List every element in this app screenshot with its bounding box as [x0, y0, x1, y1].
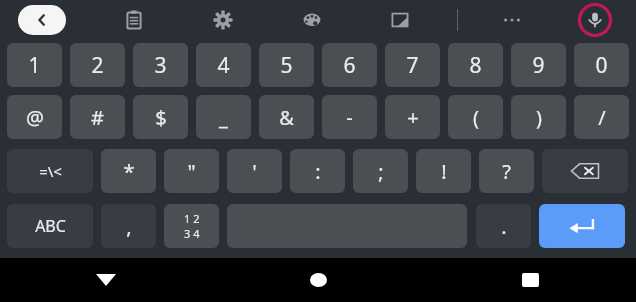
button[interactable]: ) [511, 95, 566, 139]
staticText: 6 [343, 51, 356, 80]
staticText: $ [155, 104, 167, 131]
staticText: _ [219, 104, 228, 131]
staticText: : [315, 158, 321, 185]
staticText: # [91, 104, 104, 131]
button[interactable]: Voice input [578, 3, 612, 37]
button[interactable]: 3 [133, 43, 188, 87]
staticText: ! [441, 158, 447, 185]
button[interactable]: 8 [448, 43, 503, 87]
button[interactable]: & [259, 95, 314, 139]
button[interactable]: Clipboard [119, 5, 149, 35]
staticText: 5 [280, 51, 293, 80]
staticText: 3 4 [184, 226, 200, 241]
button[interactable]: Resize keyboard [385, 5, 415, 35]
button[interactable]: : [290, 149, 345, 193]
staticText: / [598, 104, 606, 131]
staticText: - [346, 104, 353, 131]
button[interactable]: " [164, 149, 219, 193]
staticText: ? [502, 158, 511, 185]
button[interactable]: $ [133, 95, 188, 139]
button[interactable]: 2 [70, 43, 125, 87]
button[interactable]: # [70, 95, 125, 139]
button[interactable]: Back [0, 258, 212, 302]
button[interactable]: * [101, 149, 156, 193]
button[interactable]: , [101, 204, 156, 248]
button[interactable]: ? [479, 149, 534, 193]
button[interactable]: =\< [7, 149, 93, 193]
button[interactable]: - [322, 95, 377, 139]
staticText: 2 [91, 51, 104, 80]
button[interactable]: Enter [539, 204, 625, 248]
staticText: 9 [532, 51, 545, 80]
staticText: 3 [154, 51, 167, 80]
staticText: =\< [39, 161, 62, 181]
button[interactable]: ; [353, 149, 408, 193]
button[interactable]: Numbers [164, 204, 219, 248]
button[interactable]: Back [18, 5, 66, 35]
staticText: 7 [406, 51, 419, 80]
staticText: , [126, 213, 132, 240]
button[interactable]: 1 [7, 43, 62, 87]
button[interactable]: _ [196, 95, 251, 139]
staticText: 1 [28, 51, 41, 80]
button[interactable]: 9 [511, 43, 566, 87]
staticText: ; [378, 158, 384, 185]
button[interactable]: Backspace [542, 149, 628, 193]
staticText: 1 2 [184, 211, 200, 226]
staticText: 0 [595, 51, 608, 80]
button[interactable]: ABC [7, 204, 93, 248]
button[interactable]: Recent apps [424, 258, 636, 302]
staticText: . [501, 213, 507, 240]
staticText: ' [252, 158, 257, 185]
button[interactable]: 0 [574, 43, 629, 87]
staticText: 4 [217, 51, 230, 80]
button[interactable]: @ [7, 95, 62, 139]
staticText: * [123, 158, 135, 185]
button[interactable]: ' [227, 149, 282, 193]
button[interactable]: Theme [297, 5, 327, 35]
button[interactable]: ! [416, 149, 471, 193]
button[interactable]: Home [212, 258, 424, 302]
button[interactable]: / [574, 95, 629, 139]
button[interactable]: 6 [322, 43, 377, 87]
button[interactable]: 4 [196, 43, 251, 87]
staticText: ( [473, 104, 479, 131]
button[interactable]: More options [497, 5, 527, 35]
staticText: " [187, 158, 196, 185]
staticText: 8 [469, 51, 482, 80]
button[interactable]: Settings [208, 5, 238, 35]
button[interactable]: . [476, 204, 531, 248]
staticText: @ [26, 104, 44, 131]
button[interactable]: + [385, 95, 440, 139]
staticText: ABC [35, 215, 66, 237]
button[interactable]: 5 [259, 43, 314, 87]
staticText: ) [536, 104, 542, 131]
staticText: + [407, 104, 419, 131]
button[interactable]: 7 [385, 43, 440, 87]
staticText: & [279, 104, 294, 131]
button[interactable]: ( [448, 95, 503, 139]
